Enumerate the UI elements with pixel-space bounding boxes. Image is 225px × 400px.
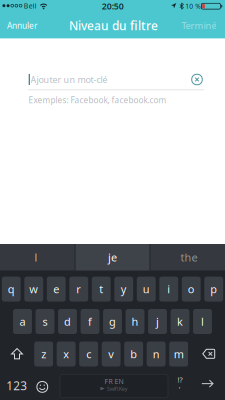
staticText: l: [201, 314, 204, 329]
button[interactable]: je: [75, 244, 149, 270]
button[interactable]: the: [152, 244, 225, 270]
button[interactable]: o: [182, 277, 201, 302]
staticText: SwiftKey: [107, 385, 128, 392]
button[interactable]: c: [79, 341, 98, 366]
staticText: x: [63, 347, 69, 361]
button[interactable]: j: [148, 309, 167, 334]
staticText: n: [153, 347, 160, 361]
staticText: p: [210, 282, 217, 297]
button[interactable]: u: [137, 277, 156, 302]
button[interactable]: Terminé: [176, 12, 216, 38]
button[interactable]: Punctuation: [171, 373, 187, 398]
button[interactable]: t: [92, 277, 111, 302]
button[interactable]: Space: [60, 374, 168, 398]
staticText: 123: [6, 377, 27, 394]
staticText: d: [64, 314, 71, 329]
staticText: Niveau du filtre: [69, 17, 158, 34]
staticText: k: [177, 314, 183, 329]
staticText: j: [156, 314, 159, 329]
button[interactable]: f: [80, 309, 99, 334]
button[interactable]: i: [159, 277, 178, 302]
staticText: w: [29, 282, 38, 297]
staticText: h: [131, 314, 138, 329]
button[interactable]: n: [147, 341, 166, 366]
button[interactable]: e: [47, 277, 66, 302]
staticText: l: [34, 250, 37, 265]
staticText: Bell: [24, 1, 37, 11]
button[interactable]: 123: [4, 373, 30, 398]
staticText: 10 %: [185, 2, 201, 11]
button[interactable]: Return: [201, 379, 213, 388]
staticText: je: [108, 250, 117, 265]
staticText: Annuler: [7, 20, 37, 31]
button[interactable]: l: [193, 309, 212, 334]
button[interactable]: m: [169, 341, 188, 366]
staticText: c: [86, 347, 91, 361]
staticText: the: [180, 250, 197, 265]
staticText: i: [167, 282, 170, 297]
button[interactable]: q: [2, 277, 21, 302]
staticText: !?: [177, 375, 182, 385]
staticText: .: [178, 380, 180, 391]
button[interactable]: h: [125, 309, 144, 334]
staticText: t: [99, 282, 103, 297]
button[interactable]: r: [69, 277, 88, 302]
staticText: 20:50: [102, 0, 124, 12]
staticText: Ajouter un mot-clé: [30, 73, 107, 86]
staticText: f: [88, 314, 92, 329]
button[interactable]: g: [103, 309, 122, 334]
staticText: r: [76, 282, 81, 297]
staticText: FR EN: [104, 376, 123, 386]
button[interactable]: Clear text: [191, 73, 203, 85]
staticText: m: [174, 347, 184, 361]
button[interactable]: Shift: [11, 348, 23, 359]
staticText: o: [188, 282, 195, 297]
button[interactable]: x: [57, 341, 76, 366]
button[interactable]: p: [204, 277, 223, 302]
button[interactable]: a: [13, 309, 32, 334]
button[interactable]: k: [171, 309, 189, 334]
button[interactable]: v: [102, 341, 121, 366]
staticText: u: [143, 282, 150, 297]
button[interactable]: l: [0, 244, 72, 270]
staticText: q: [8, 282, 15, 297]
staticText: s: [42, 314, 47, 329]
button[interactable]: d: [58, 309, 77, 334]
button[interactable]: s: [35, 309, 54, 334]
button[interactable]: y: [114, 277, 133, 302]
button[interactable]: b: [124, 341, 143, 366]
staticText: y: [121, 282, 127, 297]
staticText: b: [130, 347, 137, 361]
button[interactable]: Annuler: [7, 12, 47, 38]
staticText: e: [53, 282, 59, 297]
button[interactable]: z: [34, 341, 53, 366]
button[interactable]: Delete: [202, 349, 215, 359]
button[interactable]: w: [24, 277, 43, 302]
staticText: g: [109, 314, 116, 329]
staticText: Terminé: [181, 19, 216, 32]
staticText: z: [41, 347, 46, 361]
button[interactable]: Emoji: [36, 381, 48, 393]
staticText: Exemples: Facebook, facebook.com: [28, 94, 166, 106]
staticText: a: [19, 314, 25, 329]
staticText: v: [108, 347, 114, 361]
